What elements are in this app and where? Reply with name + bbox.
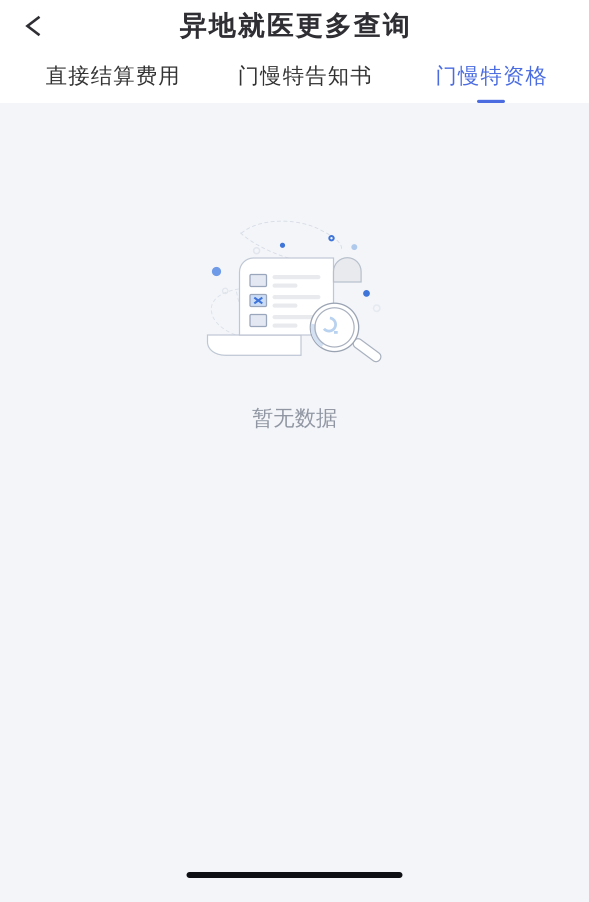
- staticText: 直接结算费用: [46, 63, 179, 89]
- staticText: 异地就医更多查询: [179, 10, 409, 42]
- button[interactable]: 直接结算费用: [31, 52, 194, 103]
- staticText: 暂无数据: [252, 405, 337, 431]
- button[interactable]: 门慢特告知书: [225, 52, 384, 103]
- staticText: 门慢特资格: [435, 63, 546, 89]
- button[interactable]: 门慢特资格: [415, 52, 567, 103]
- staticText: 门慢特告知书: [238, 63, 371, 89]
- button[interactable]: 返回: [0, 2, 55, 50]
